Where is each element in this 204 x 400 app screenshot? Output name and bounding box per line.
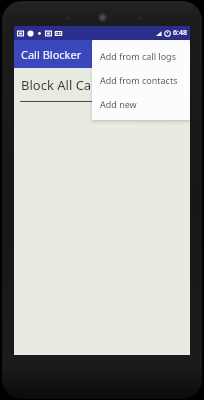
staticText: Add from call logs [100, 50, 176, 62]
staticText: Call Blocker [21, 47, 82, 62]
staticText: Block All Calls [21, 76, 105, 94]
staticText: Add new [100, 98, 137, 110]
button[interactable]: Add from contacts [92, 68, 190, 92]
button[interactable]: Add from call logs [92, 44, 190, 68]
button[interactable]: Add new [92, 92, 190, 116]
staticText: Add from contacts [100, 74, 178, 86]
staticText: 6:48 [173, 28, 187, 38]
